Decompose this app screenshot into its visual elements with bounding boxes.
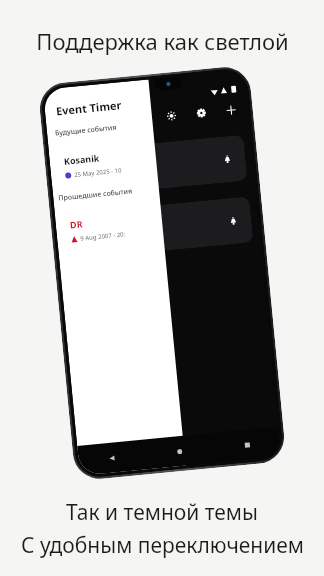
staticText: С удобным переключением <box>21 531 304 560</box>
staticText: 9 Aug 2007 - 20: <box>80 230 127 243</box>
staticText: Event Timer <box>55 97 122 118</box>
staticText: Так и темной темы <box>66 498 258 527</box>
staticText: Прошедшие события <box>58 186 133 203</box>
staticText: DR <box>69 217 83 231</box>
button[interactable]: Settings <box>191 103 211 122</box>
button[interactable]: Recents <box>237 435 257 454</box>
staticText: Поддержка как светлой <box>36 26 289 56</box>
button[interactable]: Toggle theme <box>161 106 181 125</box>
button[interactable]: Notification <box>53 135 247 199</box>
button[interactable]: Add event <box>221 100 240 119</box>
button[interactable]: Notification <box>226 213 241 229</box>
button[interactable]: Kosanik <box>49 139 156 188</box>
button[interactable]: Notification <box>59 196 253 260</box>
button[interactable]: Back <box>102 448 121 467</box>
staticText: Будущие события <box>55 123 117 139</box>
staticText: 25 May 2025 - 10 <box>74 166 122 179</box>
staticText: Kosanik <box>63 151 100 167</box>
button[interactable]: Home <box>169 441 189 461</box>
button[interactable]: DR <box>55 203 162 252</box>
button[interactable]: Notification <box>220 152 235 167</box>
